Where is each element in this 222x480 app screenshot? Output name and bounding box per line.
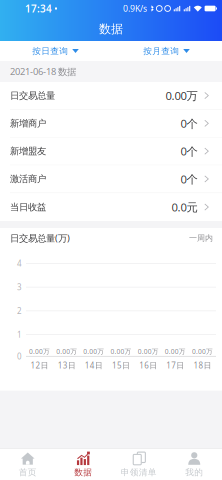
button[interactable]: 我的 xyxy=(166,449,222,480)
staticText: 16日 xyxy=(139,360,157,371)
staticText: 0个 xyxy=(180,116,197,131)
button[interactable]: 申领清单 xyxy=(111,449,166,480)
button[interactable]: 按日查询 xyxy=(0,41,111,61)
button[interactable]: 数据 xyxy=(55,449,111,480)
staticText: 18日 xyxy=(193,360,211,371)
staticText: 数据 xyxy=(74,467,92,478)
staticText: 2021-06-18 数据 xyxy=(10,65,76,78)
staticText: 17:34 xyxy=(25,2,52,15)
staticText: 新增盟友 xyxy=(10,145,46,157)
staticText: 0个 xyxy=(180,143,197,159)
staticText: 15日 xyxy=(112,360,130,371)
staticText: 0.00万 xyxy=(110,347,131,356)
staticText: 0.0元 xyxy=(171,199,197,215)
button[interactable]: 按月查询 xyxy=(111,41,222,61)
staticText: 一周内 xyxy=(189,233,213,243)
staticText: 按月查询 xyxy=(143,45,179,56)
staticText: 0.00万 xyxy=(29,347,50,356)
button[interactable]: 首页 xyxy=(0,449,55,480)
staticText: 3 xyxy=(17,282,22,293)
staticText: 12日 xyxy=(31,360,49,371)
staticText: 0.00万 xyxy=(192,347,213,356)
staticText: 17日 xyxy=(166,360,184,371)
staticText: 按日查询 xyxy=(32,45,68,56)
staticText: 新增商户 xyxy=(10,117,46,129)
staticText: 数据 xyxy=(99,21,123,36)
button[interactable]: 日交易总量 xyxy=(0,82,222,110)
staticText: 0 xyxy=(17,351,22,362)
button[interactable]: 当日收益 xyxy=(0,193,222,221)
staticText: 0.9K/s xyxy=(123,3,147,14)
staticText: 4 xyxy=(17,258,22,269)
staticText: 0.00万 xyxy=(165,347,186,356)
staticText: 0个 xyxy=(180,171,197,187)
staticText: 0.00万 xyxy=(165,88,197,103)
staticText: 激活商户 xyxy=(10,173,46,185)
button[interactable]: 新增盟友 xyxy=(0,138,222,165)
button[interactable]: 新增商户 xyxy=(0,110,222,138)
staticText: 日交易总量 xyxy=(10,90,55,101)
staticText: 申领清单 xyxy=(121,467,157,478)
staticText: 0.00万 xyxy=(138,347,159,356)
staticText: 日交易总量(万) xyxy=(10,232,70,244)
staticText: 1 xyxy=(17,329,22,340)
staticText: 0.00万 xyxy=(83,347,104,356)
button[interactable]: 激活商户 xyxy=(0,165,222,193)
staticText: 我的 xyxy=(185,467,203,478)
staticText: 2 xyxy=(17,305,22,316)
staticText: 14日 xyxy=(85,360,103,371)
staticText: 0.00万 xyxy=(56,347,77,356)
staticText: 首页 xyxy=(19,467,37,478)
staticText: 当日收益 xyxy=(10,201,46,213)
staticText: 13日 xyxy=(58,360,76,371)
